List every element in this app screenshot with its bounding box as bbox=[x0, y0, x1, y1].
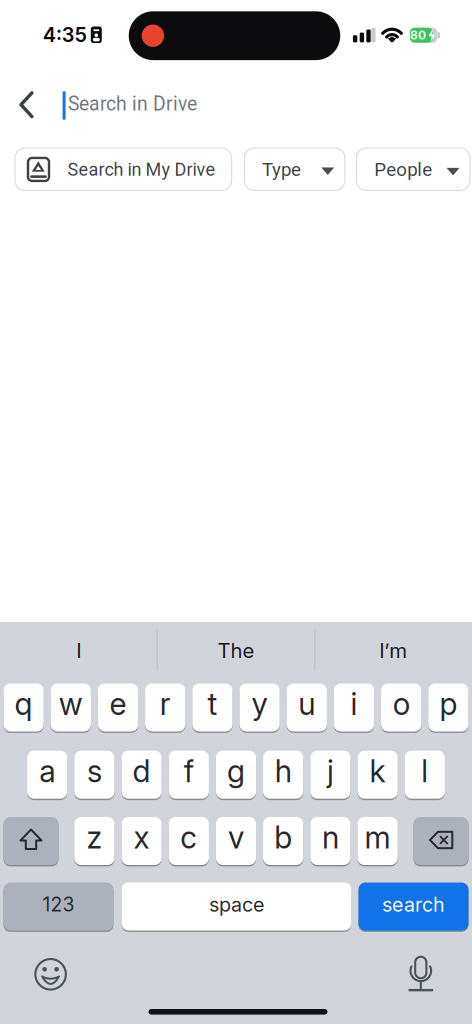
button[interactable]: Search in My Drive bbox=[15, 148, 232, 190]
button[interactable]: 123 bbox=[3, 881, 113, 931]
staticText: 80 bbox=[410, 28, 426, 42]
staticText: e bbox=[109, 686, 126, 722]
button[interactable]: space bbox=[121, 881, 351, 931]
staticText: a bbox=[39, 753, 55, 790]
staticText: Search in My Drive bbox=[68, 159, 216, 180]
staticText: People bbox=[374, 159, 432, 180]
button[interactable]: Shift bbox=[3, 816, 58, 866]
button[interactable]: a bbox=[27, 750, 67, 800]
staticText: d bbox=[133, 753, 151, 790]
button[interactable]: t bbox=[192, 682, 232, 732]
staticText: o bbox=[393, 686, 410, 722]
button[interactable]: u bbox=[287, 682, 327, 732]
button[interactable]: r bbox=[145, 682, 185, 732]
staticText: Search in Drive bbox=[68, 92, 197, 115]
staticText: q bbox=[15, 686, 33, 722]
button[interactable]: z bbox=[74, 816, 114, 866]
staticText: m bbox=[365, 819, 391, 856]
button[interactable]: n bbox=[310, 816, 350, 866]
button[interactable]: b bbox=[263, 816, 303, 866]
button[interactable]: w bbox=[51, 682, 91, 732]
staticText: i bbox=[350, 686, 357, 722]
staticText: z bbox=[86, 819, 102, 856]
staticText: 123 bbox=[42, 893, 74, 916]
button[interactable]: y bbox=[239, 682, 280, 732]
button[interactable]: v bbox=[216, 816, 256, 866]
staticText: v bbox=[228, 819, 244, 856]
button[interactable]: Delete bbox=[413, 816, 468, 866]
button[interactable]: Back bbox=[4, 83, 48, 127]
staticText: 4:35 bbox=[43, 22, 87, 47]
staticText: Type bbox=[262, 159, 301, 180]
staticText: u bbox=[298, 686, 315, 722]
button[interactable]: c bbox=[169, 816, 209, 866]
button[interactable]: k bbox=[357, 750, 398, 800]
button[interactable]: I’m bbox=[318, 627, 468, 673]
staticText: j bbox=[327, 753, 334, 790]
button[interactable]: I bbox=[4, 627, 154, 673]
button[interactable]: g bbox=[216, 750, 256, 800]
button[interactable]: p bbox=[428, 682, 468, 732]
staticText: c bbox=[180, 819, 197, 856]
button[interactable]: o bbox=[381, 682, 421, 732]
staticText: y bbox=[252, 686, 268, 722]
button[interactable]: search bbox=[358, 881, 468, 931]
staticText: I bbox=[76, 638, 81, 663]
button[interactable]: The bbox=[161, 627, 311, 673]
staticText: search bbox=[382, 893, 445, 916]
staticText: k bbox=[370, 753, 386, 790]
button[interactable]: q bbox=[3, 682, 44, 732]
button[interactable]: e bbox=[98, 682, 138, 732]
button[interactable]: Search in Drive bbox=[52, 83, 472, 127]
staticText: s bbox=[87, 753, 102, 790]
staticText: l bbox=[421, 753, 428, 790]
button[interactable]: Type bbox=[244, 148, 345, 190]
button[interactable]: s bbox=[74, 750, 114, 800]
button[interactable]: x bbox=[121, 816, 162, 866]
staticText: p bbox=[439, 686, 457, 722]
staticText: b bbox=[274, 819, 292, 856]
staticText: t bbox=[207, 686, 217, 722]
staticText: I’m bbox=[379, 638, 407, 663]
staticText: r bbox=[160, 686, 171, 722]
staticText: w bbox=[59, 686, 83, 722]
button[interactable]: d bbox=[121, 750, 162, 800]
button[interactable]: i bbox=[334, 682, 374, 732]
button[interactable]: l bbox=[405, 750, 445, 800]
staticText: g bbox=[227, 753, 245, 790]
button[interactable]: m bbox=[357, 816, 398, 866]
staticText: f bbox=[184, 753, 194, 790]
button[interactable]: Dictate bbox=[406, 953, 436, 993]
staticText: n bbox=[322, 819, 339, 856]
button[interactable]: j bbox=[310, 750, 350, 800]
button[interactable]: Emoji bbox=[33, 956, 69, 992]
staticText: x bbox=[134, 819, 150, 856]
button[interactable]: People bbox=[356, 148, 470, 190]
staticText: The bbox=[217, 638, 254, 663]
staticText: space bbox=[209, 893, 264, 916]
staticText: h bbox=[275, 753, 292, 790]
button[interactable]: h bbox=[263, 750, 303, 800]
button[interactable]: f bbox=[169, 750, 209, 800]
